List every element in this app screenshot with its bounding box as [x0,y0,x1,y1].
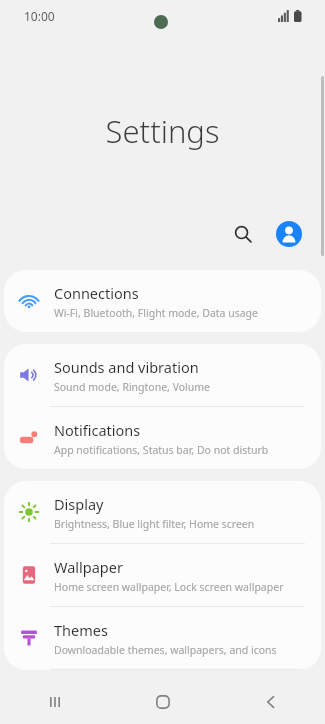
staticText: Wallpaper [54,557,123,577]
staticText: Themes [54,620,108,640]
button[interactable]: Sounds and vibration [4,344,321,406]
button[interactable]: Wallpaper [4,544,321,606]
button[interactable]: Recents [0,680,109,724]
button[interactable]: Back [217,680,325,724]
button[interactable]: Search [223,214,263,254]
button[interactable]: Display [4,481,321,543]
staticText: Display [54,494,104,514]
staticText: Brightness, Blue light filter, Home scre… [54,517,255,531]
button[interactable]: Account [269,214,309,254]
staticText: Wi-Fi, Bluetooth, Flight mode, Data usag… [54,306,259,320]
button[interactable]: Home [109,680,217,724]
staticText: 10:00 [24,8,55,24]
button[interactable]: Themes [4,607,321,669]
staticText: Home screen wallpaper, Lock screen wallp… [54,580,284,594]
staticText: Sounds and vibration [54,357,199,377]
button[interactable]: Notifications [4,407,321,469]
staticText: App notifications, Status bar, Do not di… [54,443,269,457]
button[interactable]: Connections [4,270,321,332]
staticText: Settings [0,110,325,152]
staticText: Connections [54,283,139,303]
staticText: Sound mode, Ringtone, Volume [54,380,211,394]
staticText: Downloadable themes, wallpapers, and ico… [54,643,277,657]
staticText: Notifications [54,420,141,440]
